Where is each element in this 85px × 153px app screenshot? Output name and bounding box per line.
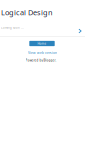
staticText: View web version bbox=[28, 50, 57, 55]
staticText: Home bbox=[37, 41, 46, 45]
button[interactable]: Home bbox=[29, 41, 55, 46]
staticText: Coming soon ... bbox=[1, 26, 24, 30]
button[interactable]: Open navigation bbox=[76, 26, 84, 36]
button[interactable]: View web version bbox=[28, 50, 57, 55]
staticText: Logical Design bbox=[1, 7, 53, 17]
staticText: Powered by Blogger. bbox=[25, 58, 56, 62]
